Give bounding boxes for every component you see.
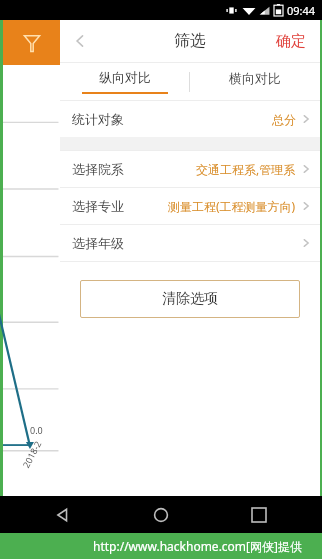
staticText: 0.0 bbox=[30, 424, 43, 436]
button[interactable]: 横向对比 bbox=[190, 63, 320, 100]
staticText: 选择专业 bbox=[72, 198, 124, 214]
button[interactable]: 选择年级 bbox=[60, 225, 320, 261]
staticText: 测量工程(工程测量方向) bbox=[168, 198, 296, 214]
staticText: 选择院系 bbox=[72, 161, 124, 177]
staticText: 2018-2 bbox=[19, 438, 44, 470]
staticText: 清除选项 bbox=[162, 290, 218, 308]
button[interactable]: 纵向对比 bbox=[60, 63, 189, 100]
staticText: http://www.hackhome.com[网侠]提供 bbox=[93, 538, 302, 554]
button[interactable]: 选择院系 bbox=[60, 151, 320, 187]
button[interactable]: Home bbox=[146, 500, 176, 530]
staticText: 总分 bbox=[272, 112, 296, 127]
button[interactable]: Filter bbox=[3, 20, 60, 65]
button[interactable]: 选择专业 bbox=[60, 188, 320, 224]
staticText: 统计对象 bbox=[72, 111, 124, 127]
button[interactable]: 清除选项 bbox=[80, 280, 300, 318]
staticText: 确定 bbox=[276, 32, 306, 51]
staticText: 选择年级 bbox=[72, 235, 124, 251]
staticText: 筛选 bbox=[174, 31, 206, 51]
button[interactable]: Back bbox=[60, 20, 100, 62]
staticText: 09:44 bbox=[287, 3, 316, 18]
staticText: 交通工程系,管理系 bbox=[196, 161, 296, 177]
button[interactable]: 确定 bbox=[262, 20, 320, 62]
staticText: 纵向对比 bbox=[99, 69, 151, 85]
button[interactable]: 统计对象 bbox=[60, 101, 320, 137]
button[interactable]: Recents bbox=[244, 500, 274, 530]
staticText: 横向对比 bbox=[229, 70, 281, 86]
button[interactable]: Back bbox=[48, 500, 78, 530]
